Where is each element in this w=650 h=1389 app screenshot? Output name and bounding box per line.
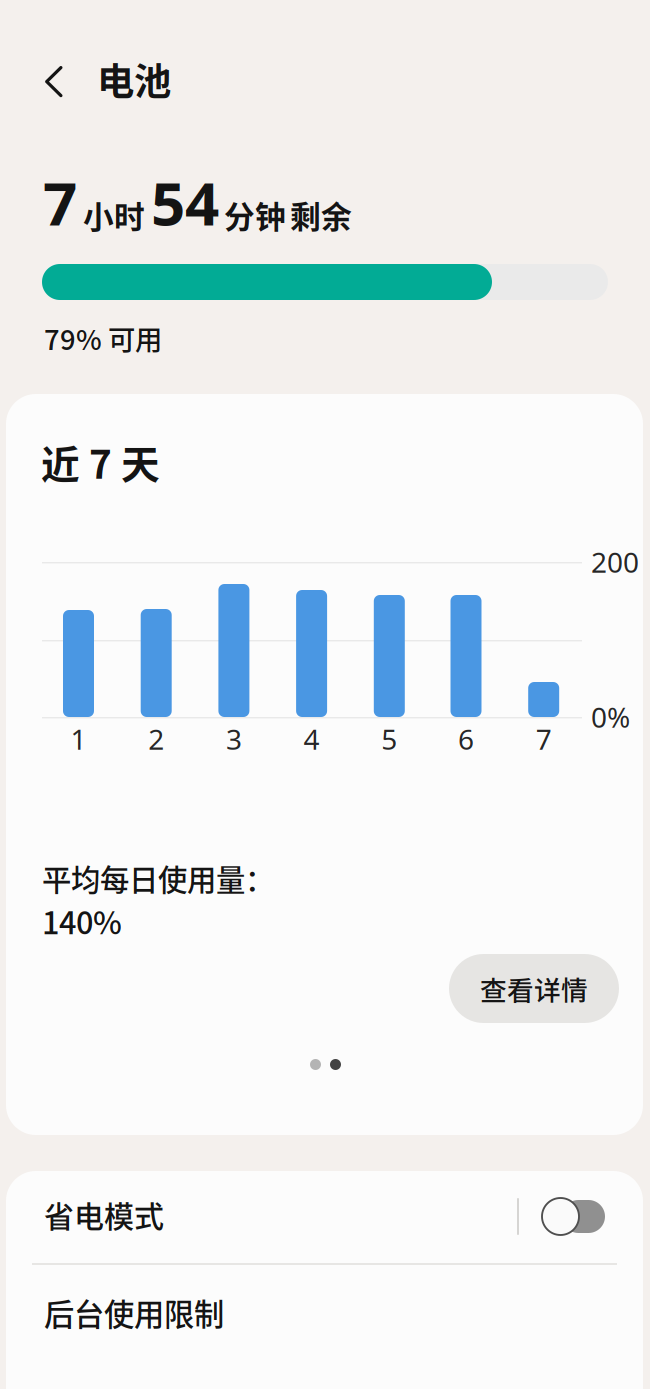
staticText: 3 [226,720,242,758]
staticText: 查看详情 [480,969,588,1008]
button[interactable]: 省电模式开关 [0,0,650,1389]
staticText: 54 [151,162,219,242]
staticText: 6 [458,720,474,758]
staticText: 200 [591,543,639,581]
button[interactable]: 返回 [0,0,650,1389]
button[interactable]: 查看详情 [0,0,650,1389]
staticText: 2 [148,720,164,758]
staticText: 0% [591,698,630,736]
button[interactable]: 省电模式 [0,0,650,1389]
staticText: 4 [304,720,320,758]
staticText: 近 7 天 [41,434,160,490]
staticText: 电池 [97,52,171,106]
staticText: 平均每日使用量： [42,857,274,899]
staticText: 剩余 [290,193,352,237]
staticText: 79% 可用 [44,318,162,358]
staticText: 7 [536,720,552,758]
button[interactable]: 电池 [0,0,650,1389]
button[interactable]: 后台使用限制 [0,0,650,1389]
staticText: 1 [70,720,86,758]
staticText: 140% [42,899,122,943]
staticText: 省电模式 [44,1193,164,1236]
staticText: 小时 [83,193,145,237]
staticText: 分钟 [224,193,286,237]
staticText: 5 [381,720,397,758]
staticText: 7 [43,162,77,242]
staticText: 后台使用限制 [44,1291,224,1334]
